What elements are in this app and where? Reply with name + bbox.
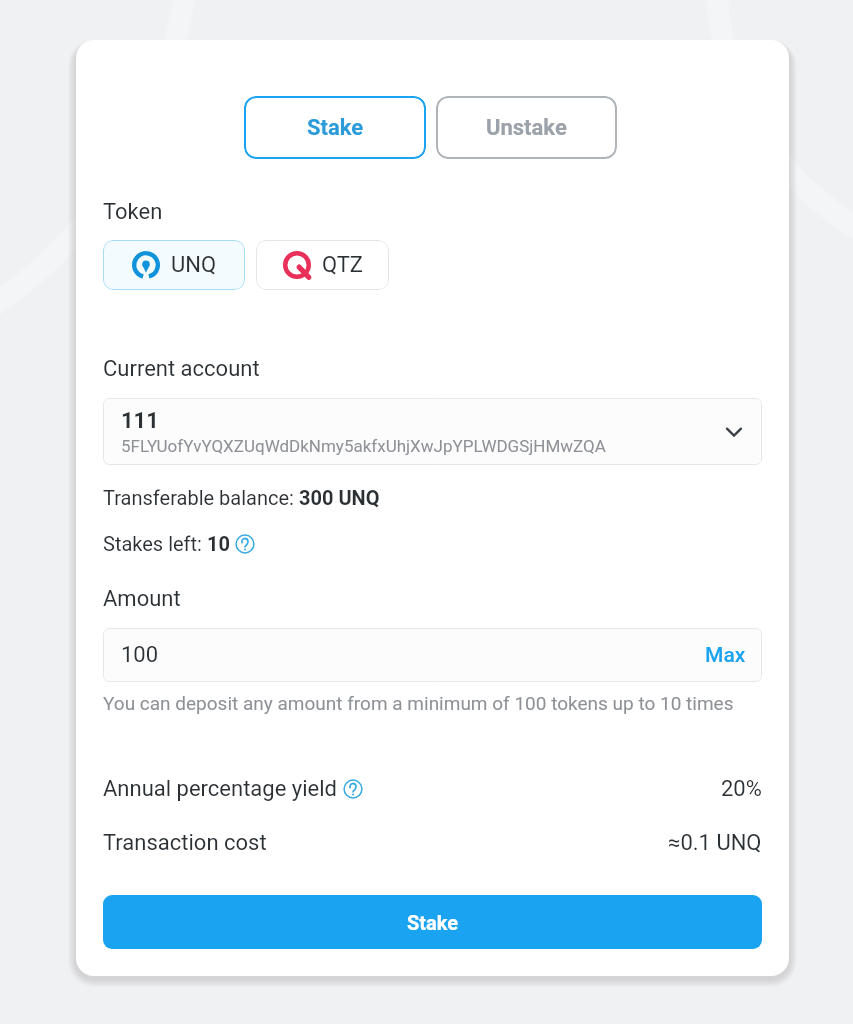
button[interactable]: Unstake [436, 96, 617, 159]
button[interactable]: Help [343, 779, 363, 799]
staticText: Token [103, 199, 163, 225]
button[interactable]: Stake [244, 96, 426, 159]
staticText: Stake [407, 911, 459, 934]
staticText: 10 [207, 532, 230, 555]
button[interactable]: 111 [103, 398, 762, 465]
button[interactable]: Max [691, 628, 762, 682]
button[interactable]: Stake [103, 895, 762, 949]
staticText: Stakes left: [103, 532, 207, 555]
staticText: Stake [307, 115, 364, 141]
staticText: QTZ [322, 252, 363, 278]
staticText: Max [705, 643, 746, 668]
button[interactable]: UNQ [103, 240, 245, 290]
staticText: Unstake [486, 115, 567, 141]
other: Expand account list [727, 426, 741, 438]
button[interactable]: QTZ [256, 240, 389, 290]
staticText: Transaction cost [103, 830, 267, 856]
staticText: 111 [121, 408, 159, 434]
staticText: 100 [121, 642, 159, 668]
staticText: 300 UNQ [299, 486, 380, 509]
staticText: Transferable balance: [103, 486, 299, 509]
staticText: 20% [721, 776, 762, 802]
staticText: Annual percentage yield [103, 776, 337, 802]
staticText: 5FLYUofYvYQXZUqWdDkNmy5akfxUhjXwJpYPLWDG… [121, 436, 606, 456]
staticText: Amount [103, 586, 181, 612]
staticText: Current account [103, 356, 260, 382]
button[interactable]: Help [235, 534, 255, 554]
staticText: UNQ [171, 252, 217, 278]
staticText: ≈0.1 UNQ [668, 830, 762, 856]
staticText: You can deposit any amount from a minimu… [103, 692, 734, 714]
